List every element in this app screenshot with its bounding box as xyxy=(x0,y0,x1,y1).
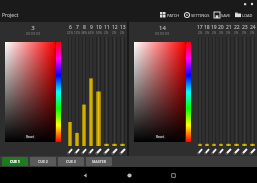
button[interactable]: 18 xyxy=(204,22,210,156)
button[interactable]: 17 xyxy=(197,22,203,156)
button[interactable]: CUE 1 xyxy=(2,157,28,166)
staticText: 2% xyxy=(198,31,203,35)
staticText: 9 xyxy=(90,24,93,31)
button[interactable]: 6 xyxy=(67,22,73,156)
button[interactable]: Edit channel 24 xyxy=(249,148,256,155)
staticText: 11 xyxy=(104,24,110,31)
button[interactable]: Hue xyxy=(186,42,191,142)
staticText: 0 0 0 0 0 0 xyxy=(26,32,41,36)
staticText: 38% xyxy=(81,31,87,35)
staticText: 2% xyxy=(120,31,125,35)
staticText: 13 xyxy=(120,24,126,31)
button[interactable]: 7 xyxy=(74,22,80,156)
button[interactable]: 9 xyxy=(88,22,94,156)
button[interactable]: 12 xyxy=(111,22,118,156)
button[interactable]: 8 xyxy=(81,22,87,156)
button[interactable]: Recents xyxy=(165,167,181,183)
button[interactable]: 20 xyxy=(218,22,224,156)
staticText: 22% xyxy=(67,31,73,35)
button[interactable]: 11 xyxy=(103,22,110,156)
button[interactable]: Edit channel 22 xyxy=(233,148,240,155)
staticText: 14 xyxy=(159,24,166,32)
staticText: 10 xyxy=(96,24,102,31)
staticText: 2% xyxy=(234,31,239,35)
staticText: 7 xyxy=(76,24,79,31)
staticText: 19 xyxy=(211,24,217,31)
staticText: Reset xyxy=(156,135,164,139)
button[interactable]: 19 xyxy=(211,22,217,156)
staticText: Project xyxy=(2,12,19,19)
button[interactable]: CUE 2 xyxy=(30,157,56,166)
button[interactable]: PATCH xyxy=(158,12,182,18)
button[interactable]: Edit channel 8 xyxy=(81,148,87,155)
staticText: PATCH xyxy=(167,13,180,18)
button[interactable]: Hue xyxy=(56,42,61,142)
staticText: 2% xyxy=(212,31,217,35)
staticText: 50% xyxy=(96,31,102,35)
staticText: 21 xyxy=(226,24,232,31)
button[interactable]: Edit channel 10 xyxy=(95,148,102,155)
button[interactable]: Colour field xyxy=(5,42,55,142)
staticText: MASTER xyxy=(92,159,106,164)
staticText: Reset xyxy=(26,135,34,139)
button[interactable]: LOAD xyxy=(233,12,255,18)
staticText: 2% xyxy=(112,31,117,35)
button[interactable]: Colour field xyxy=(134,42,185,142)
button[interactable]: 10 xyxy=(95,22,102,156)
button[interactable]: Edit channel 13 xyxy=(119,148,126,155)
staticText: LOAD xyxy=(242,13,253,18)
staticText: 23 xyxy=(242,24,248,31)
staticText: 0 0 0 0 0 0 xyxy=(155,32,170,36)
button[interactable]: Edit channel 20 xyxy=(218,148,224,155)
staticText: CUE 3 xyxy=(66,159,76,164)
button[interactable]: CUE 3 xyxy=(58,157,84,166)
staticText: SAVE xyxy=(221,13,231,18)
staticText: 24 xyxy=(250,24,256,31)
button[interactable]: Edit channel 6 xyxy=(67,148,73,155)
button[interactable]: Edit channel 12 xyxy=(111,148,118,155)
staticText: 17 xyxy=(197,24,203,31)
staticText: CUE 1 xyxy=(10,159,20,164)
button[interactable]: SETTINGS xyxy=(182,12,212,18)
staticText: 2% xyxy=(205,31,210,35)
staticText: 6 xyxy=(69,24,72,31)
button[interactable]: 21 xyxy=(225,22,232,156)
button[interactable]: Back xyxy=(77,167,93,183)
staticText: 20 xyxy=(218,24,224,31)
staticText: 2% xyxy=(250,31,255,35)
button[interactable]: SAVE xyxy=(212,12,233,18)
staticText: 2% xyxy=(226,31,231,35)
button[interactable]: MASTER xyxy=(86,157,112,166)
button[interactable]: Edit channel 17 xyxy=(197,148,203,155)
staticText: 2% xyxy=(242,31,247,35)
staticText: 2% xyxy=(104,31,109,35)
button[interactable]: 22 xyxy=(233,22,240,156)
button[interactable]: Edit channel 9 xyxy=(88,148,94,155)
button[interactable]: Edit channel 23 xyxy=(241,148,248,155)
button[interactable]: 13 xyxy=(119,22,126,156)
staticText: 12% xyxy=(74,31,80,35)
staticText: 12 xyxy=(112,24,118,31)
staticText: SETTINGS xyxy=(191,13,210,18)
button[interactable]: Edit channel 7 xyxy=(74,148,80,155)
staticText: 2% xyxy=(219,31,224,35)
staticText: 3 xyxy=(31,24,35,32)
staticText: 22 xyxy=(234,24,240,31)
staticText: 18 xyxy=(204,24,210,31)
button[interactable]: Edit channel 18 xyxy=(204,148,210,155)
staticText: 8 xyxy=(83,24,86,31)
staticText: 62% xyxy=(88,31,94,35)
button[interactable]: 24 xyxy=(249,22,256,156)
button[interactable]: 23 xyxy=(241,22,248,156)
button[interactable]: Edit channel 21 xyxy=(225,148,232,155)
button[interactable]: Home xyxy=(121,167,137,183)
button[interactable]: Edit channel 11 xyxy=(103,148,110,155)
staticText: CUE 2 xyxy=(38,159,48,164)
button[interactable]: Edit channel 19 xyxy=(211,148,217,155)
